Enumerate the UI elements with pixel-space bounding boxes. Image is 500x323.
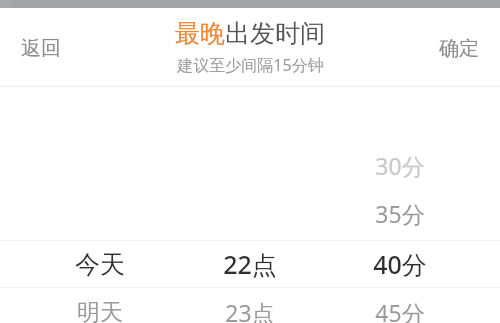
- button[interactable]: 确定: [426, 19, 492, 77]
- staticText: 返回: [21, 36, 61, 61]
- staticText: 45分: [375, 297, 425, 323]
- staticText: 30分: [375, 150, 425, 181]
- staticText: 23点: [225, 297, 275, 323]
- button[interactable]: 35分: [330, 189, 470, 237]
- staticText: 22点: [223, 247, 277, 281]
- button[interactable]: 40分: [330, 240, 470, 288]
- button[interactable]: 今天: [30, 240, 170, 288]
- staticText: 确定: [439, 36, 479, 61]
- button[interactable]: 30分: [330, 141, 470, 189]
- staticText: 40分: [373, 247, 427, 281]
- staticText: 明天: [77, 298, 123, 323]
- staticText: 35分: [375, 198, 425, 229]
- staticText: 建议至少间隔15分钟: [177, 54, 324, 76]
- button[interactable]: 23点: [180, 288, 320, 323]
- button[interactable]: 22点: [180, 240, 320, 288]
- button[interactable]: 明天: [30, 288, 170, 323]
- button[interactable]: 45分: [330, 288, 470, 323]
- staticText: 最晚出发时间: [175, 18, 325, 49]
- button[interactable]: 返回: [8, 19, 74, 77]
- staticText: 今天: [75, 249, 125, 280]
